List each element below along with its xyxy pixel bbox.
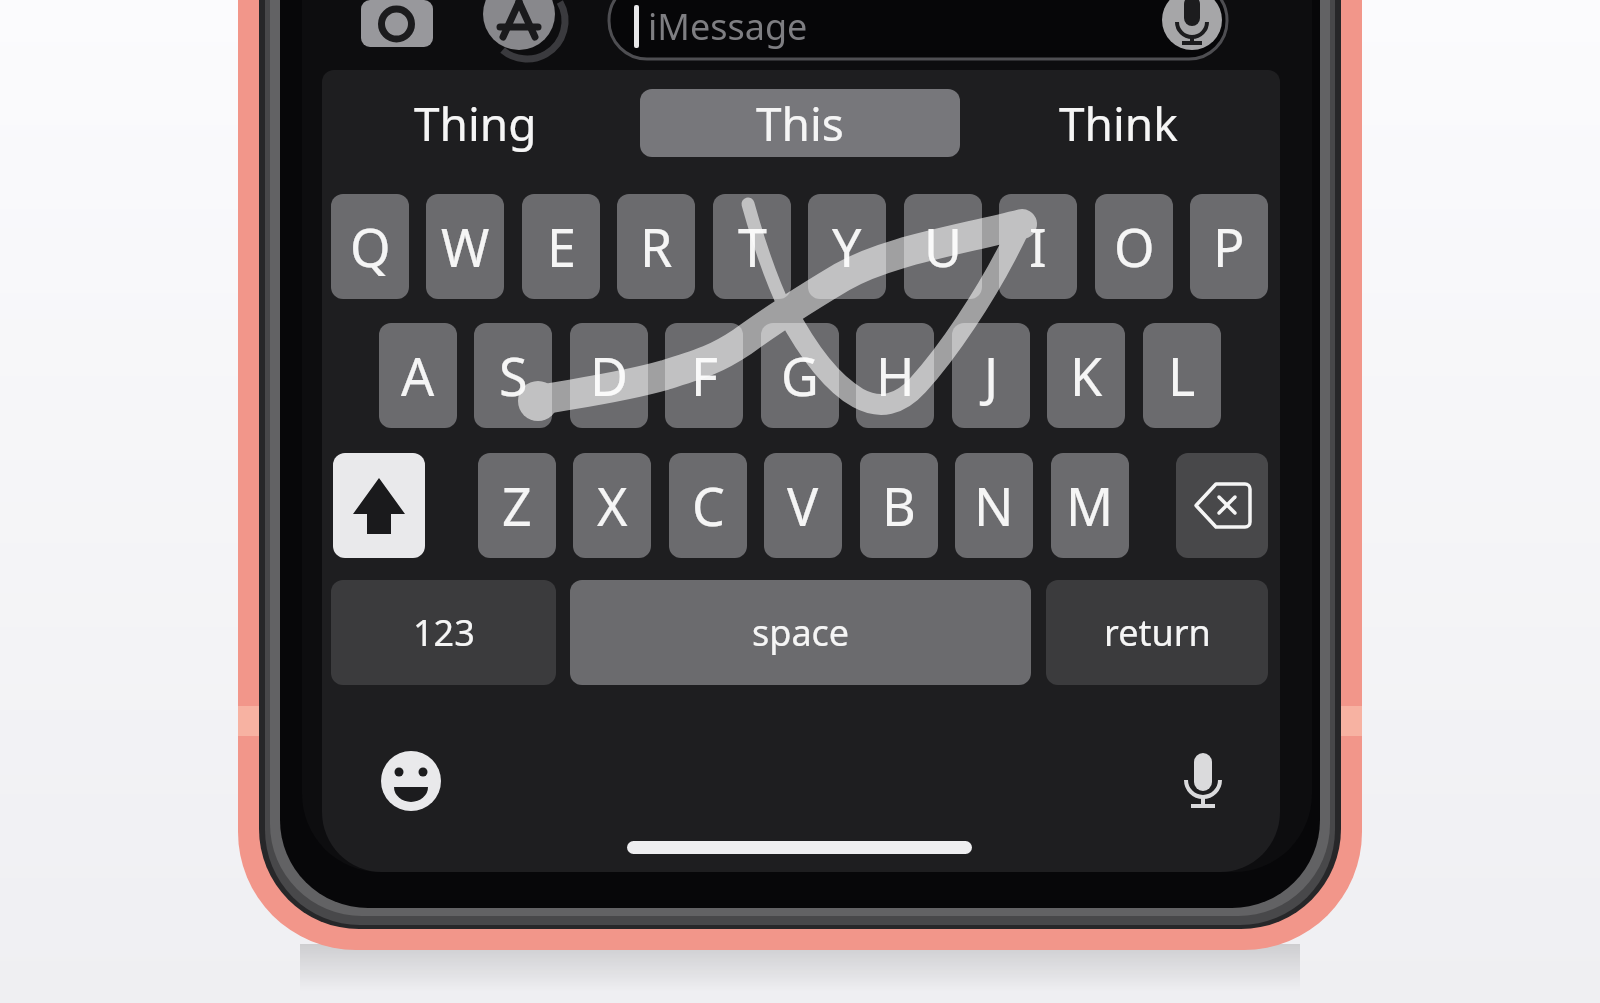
staticText: C bbox=[692, 470, 725, 541]
button[interactable]: R bbox=[617, 194, 695, 299]
staticText: J bbox=[984, 340, 999, 411]
staticText: Y bbox=[832, 211, 862, 282]
button[interactable]: A bbox=[379, 323, 457, 428]
button[interactable]: I bbox=[999, 194, 1077, 299]
button[interactable]: Z bbox=[478, 453, 556, 558]
button[interactable]: L bbox=[1143, 323, 1221, 428]
button[interactable]: D bbox=[570, 323, 648, 428]
staticText: B bbox=[882, 470, 916, 541]
staticText: Q bbox=[350, 211, 391, 282]
staticText: D bbox=[590, 340, 628, 411]
staticText: L bbox=[1168, 340, 1196, 411]
staticText: E bbox=[547, 211, 576, 282]
button[interactable] bbox=[627, 841, 972, 854]
button[interactable]: H bbox=[856, 323, 934, 428]
button[interactable]: J bbox=[952, 323, 1030, 428]
button[interactable]: Thing bbox=[355, 90, 595, 156]
staticText: H bbox=[876, 340, 915, 411]
button[interactable]: B bbox=[860, 453, 938, 558]
staticText: M bbox=[1066, 470, 1114, 541]
button[interactable]: M bbox=[1051, 453, 1129, 558]
staticText: K bbox=[1070, 340, 1103, 411]
staticText: P bbox=[1213, 211, 1245, 282]
button[interactable]: U bbox=[904, 194, 982, 299]
button[interactable]: O bbox=[1095, 194, 1173, 299]
staticText: A bbox=[401, 340, 435, 411]
button[interactable]: Q bbox=[331, 194, 409, 299]
button[interactable]: T bbox=[713, 194, 791, 299]
staticText: F bbox=[691, 340, 718, 411]
staticText: X bbox=[597, 470, 628, 541]
button[interactable]: V bbox=[764, 453, 842, 558]
button[interactable]: return bbox=[1046, 580, 1268, 685]
button[interactable]: C bbox=[669, 453, 747, 558]
button[interactable]: 123 bbox=[331, 580, 556, 685]
button[interactable]: This bbox=[640, 89, 960, 157]
button[interactable] bbox=[1176, 453, 1268, 558]
staticText: O bbox=[1114, 211, 1155, 282]
staticText: W bbox=[441, 211, 490, 282]
staticText: space bbox=[752, 608, 850, 657]
button[interactable]: iMessage bbox=[648, 0, 948, 52]
button[interactable]: P bbox=[1190, 194, 1268, 299]
button[interactable] bbox=[375, 745, 447, 817]
button[interactable]: Y bbox=[808, 194, 886, 299]
staticText: return bbox=[1104, 608, 1211, 657]
staticText: Thing bbox=[414, 92, 537, 155]
button[interactable] bbox=[333, 453, 425, 558]
staticText: N bbox=[974, 470, 1014, 541]
button[interactable]: K bbox=[1047, 323, 1125, 428]
button[interactable]: X bbox=[573, 453, 651, 558]
staticText: V bbox=[787, 470, 819, 541]
button[interactable] bbox=[1167, 745, 1239, 817]
staticText: 123 bbox=[413, 608, 475, 657]
staticText: R bbox=[640, 211, 673, 282]
button[interactable]: F bbox=[665, 323, 743, 428]
staticText: S bbox=[499, 340, 528, 411]
staticText: Think bbox=[1059, 92, 1178, 155]
button[interactable]: E bbox=[522, 194, 600, 299]
button[interactable]: space bbox=[570, 580, 1031, 685]
button[interactable]: S bbox=[474, 323, 552, 428]
button[interactable]: N bbox=[955, 453, 1033, 558]
staticText: I bbox=[1029, 211, 1047, 282]
button[interactable]: G bbox=[761, 323, 839, 428]
button[interactable]: Think bbox=[998, 90, 1238, 156]
staticText: Z bbox=[502, 470, 532, 541]
staticText: iMessage bbox=[648, 2, 808, 51]
staticText: This bbox=[756, 92, 844, 155]
staticText: T bbox=[738, 211, 767, 282]
staticText: U bbox=[924, 211, 963, 282]
staticText: G bbox=[781, 340, 819, 411]
button[interactable]: W bbox=[426, 194, 504, 299]
